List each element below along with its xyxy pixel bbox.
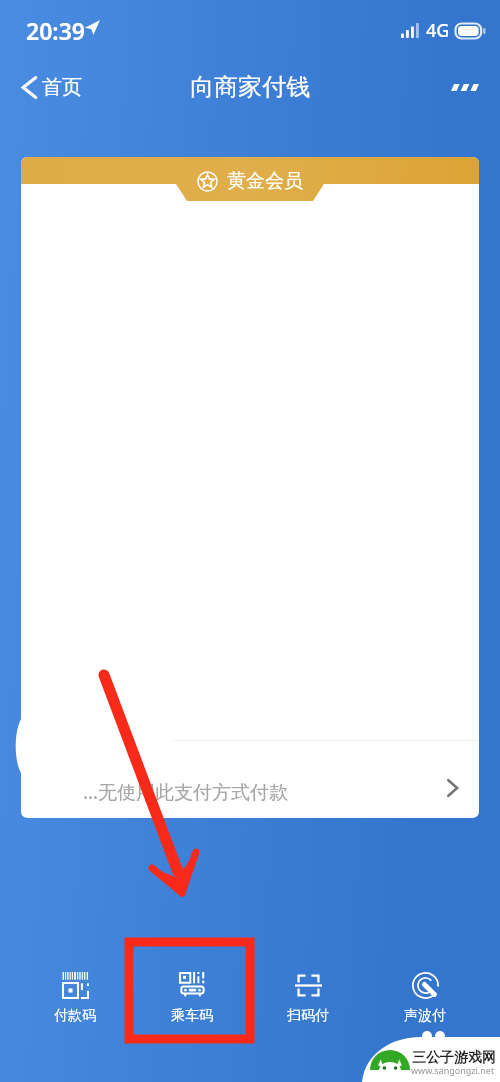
staticText: 黄金会员	[227, 169, 303, 193]
staticText: 付款码	[54, 1007, 96, 1025]
staticText: 20:39	[26, 15, 85, 46]
staticText: 首页	[42, 75, 82, 100]
button[interactable]: …无使用此支付方式付款	[21, 741, 479, 818]
staticText: 声波付	[404, 1007, 446, 1025]
staticText: 乘车码	[171, 1007, 213, 1025]
button[interactable]: 付款码	[34, 958, 116, 1039]
button[interactable]: 扫码付	[267, 958, 349, 1039]
staticText: www.sangongzi.net	[411, 1064, 495, 1076]
staticText: 三公子游戏网	[412, 1049, 496, 1067]
staticText: 向商家付钱	[190, 72, 310, 102]
staticText: 扫码付	[287, 1007, 329, 1025]
staticText: 4G	[426, 18, 450, 43]
button[interactable]: 首页	[0, 67, 94, 108]
button[interactable]: 乘车码	[151, 958, 233, 1039]
button[interactable]: 声波付	[384, 958, 466, 1039]
staticText: …无使用此支付方式付款	[83, 779, 289, 805]
button[interactable]: More options	[435, 68, 500, 107]
